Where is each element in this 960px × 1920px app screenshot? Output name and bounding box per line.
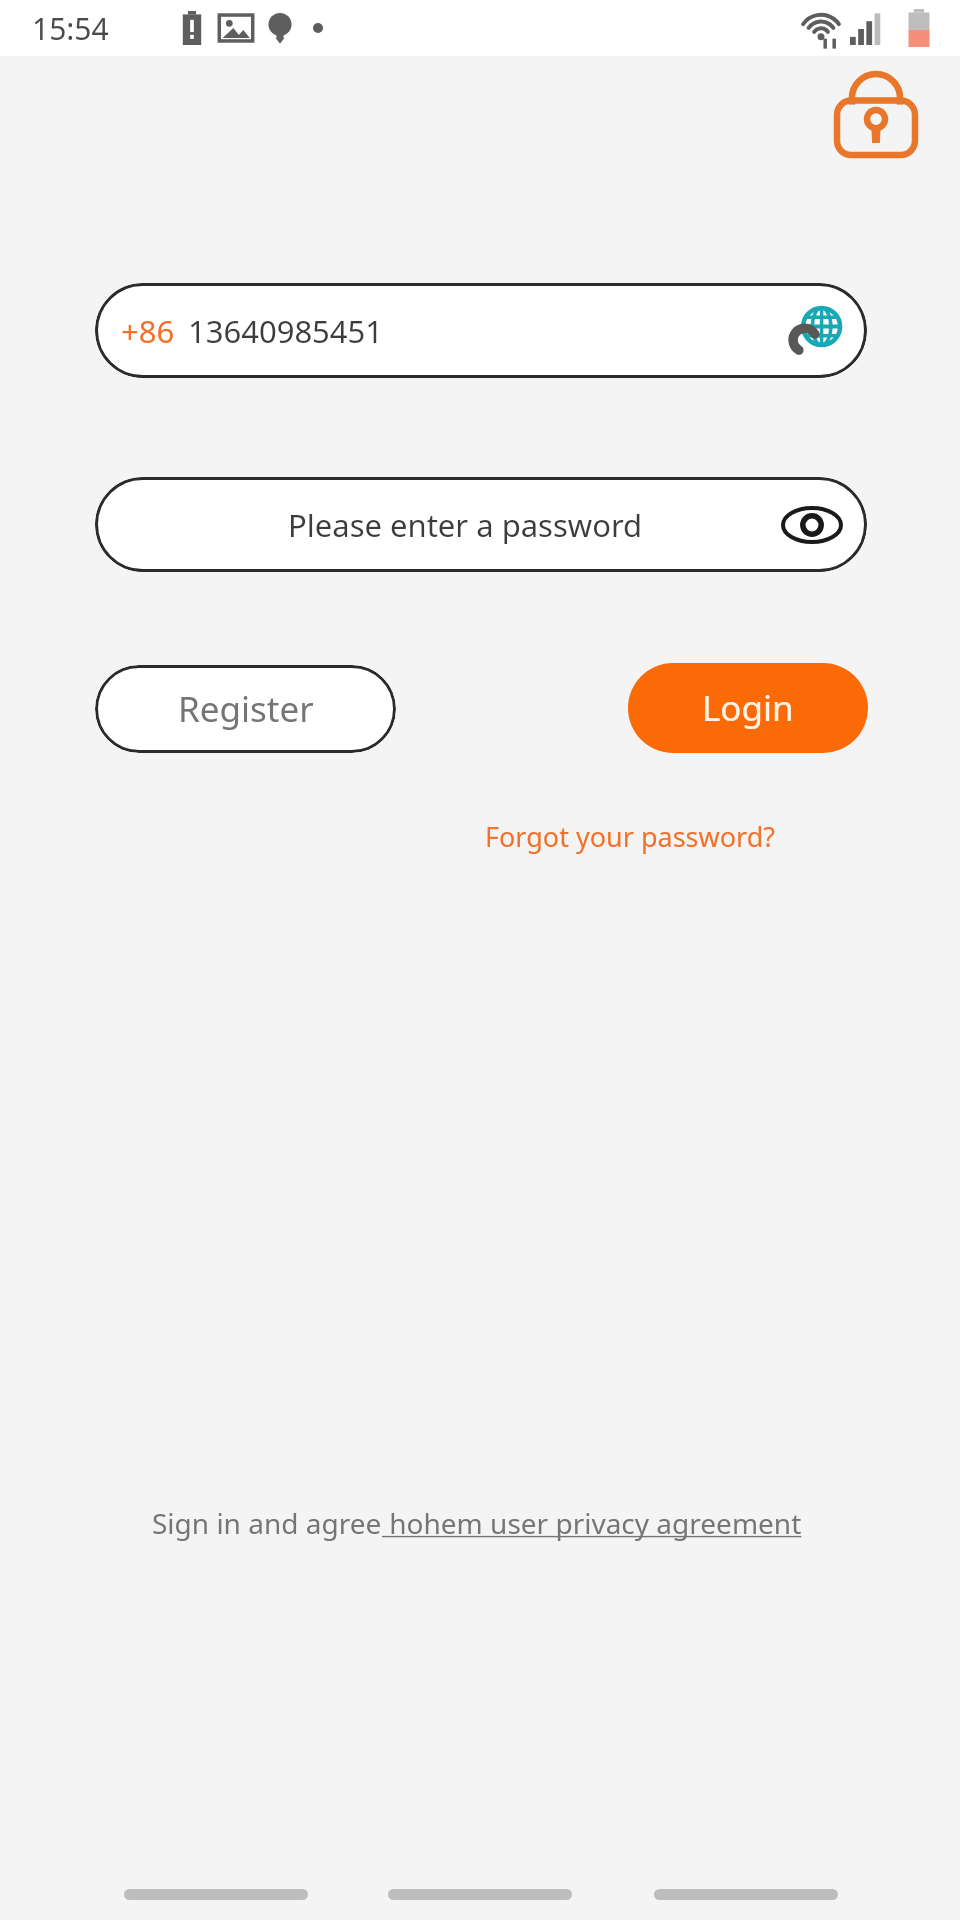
button[interactable]: Show password [781, 494, 843, 556]
button[interactable]: Secure login [824, 58, 928, 162]
staticText: 15:54 [32, 8, 109, 49]
button[interactable]: Please enter a password [95, 477, 867, 572]
button[interactable]: Home [388, 1889, 572, 1900]
button[interactable]: hohem user privacy agreement [382, 1504, 809, 1542]
staticText: Sign in and agree [152, 1504, 382, 1542]
button[interactable]: +86 [95, 283, 867, 378]
staticText: Forgot your password? [485, 818, 776, 855]
button[interactable]: Forgot your password? [480, 810, 780, 862]
button[interactable]: Login [628, 663, 868, 753]
staticText: 13640985451 [188, 310, 384, 352]
staticText: Register [178, 685, 314, 733]
button[interactable]: Register [95, 665, 396, 753]
staticText: Login [702, 684, 794, 732]
staticText: +86 [121, 310, 175, 352]
button[interactable]: Recents [124, 1889, 308, 1900]
staticText: Please enter a password [288, 504, 643, 546]
staticText: hohem user privacy agreement [382, 1504, 809, 1542]
button[interactable]: Select country code [785, 300, 847, 362]
button[interactable]: Back [654, 1889, 838, 1900]
